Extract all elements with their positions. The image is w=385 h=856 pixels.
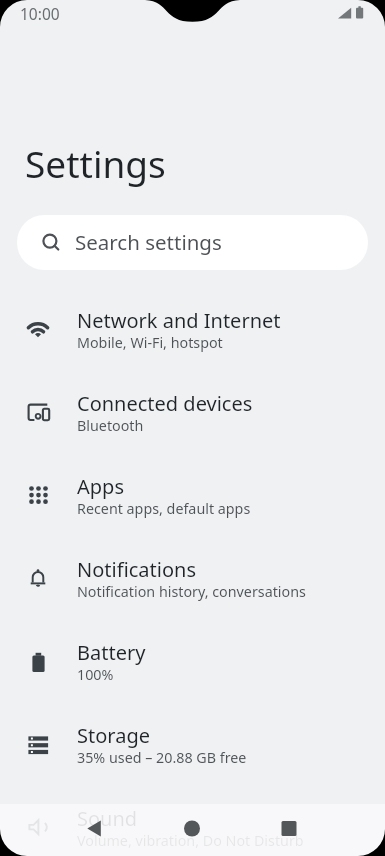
- button[interactable]: Sound: [0, 795, 385, 856]
- staticText: 100%: [77, 665, 114, 684]
- staticText: Notification history, conversations: [77, 582, 306, 601]
- button[interactable]: Connected devices: [0, 380, 385, 463]
- button[interactable]: Storage: [0, 712, 385, 795]
- staticText: Volume, vibration, Do Not Disturb: [77, 831, 304, 850]
- staticText: Notifications: [77, 556, 196, 583]
- button[interactable]: [157, 808, 227, 854]
- button[interactable]: [254, 808, 324, 854]
- staticText: Connected devices: [77, 390, 253, 417]
- staticText: Network and Internet: [77, 307, 281, 334]
- staticText: 10:00: [20, 3, 60, 24]
- staticText: Bluetooth: [77, 416, 144, 435]
- button[interactable]: Network and Internet: [0, 297, 385, 380]
- staticText: Search settings: [75, 228, 222, 256]
- button[interactable]: Search settings: [17, 215, 368, 270]
- button[interactable]: [60, 808, 130, 854]
- staticText: Sound: [77, 805, 138, 832]
- button[interactable]: Notifications: [0, 546, 385, 629]
- staticText: Mobile, Wi-Fi, hotspot: [77, 333, 223, 352]
- staticText: Recent apps, default apps: [77, 499, 251, 518]
- button[interactable]: Apps: [0, 463, 385, 546]
- button[interactable]: Battery: [0, 629, 385, 712]
- staticText: 35% used – 20.88 GB free: [77, 748, 247, 767]
- staticText: Apps: [77, 473, 124, 500]
- staticText: Storage: [77, 722, 150, 749]
- staticText: Settings: [25, 138, 166, 188]
- staticText: Battery: [77, 639, 146, 666]
